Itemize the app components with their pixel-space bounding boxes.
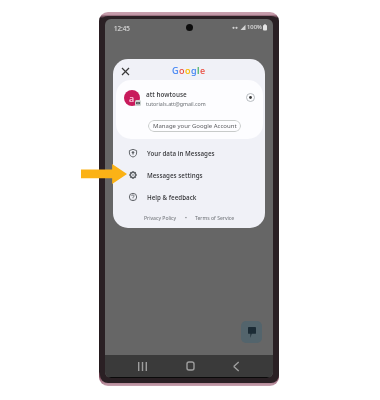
button[interactable]: Start chat <box>241 321 262 343</box>
button[interactable]: Terms of Service <box>195 215 235 222</box>
staticText: G <box>172 64 179 76</box>
button[interactable]: Recent apps <box>135 359 149 373</box>
staticText: 12:45 <box>114 24 130 32</box>
button[interactable]: Help & feedback <box>113 186 265 207</box>
staticText: Manage your Google Account <box>153 122 237 130</box>
staticText: e <box>200 64 206 76</box>
staticText: • <box>177 215 195 222</box>
staticText: Messages settings <box>147 171 203 179</box>
staticText: Your data in Messages <box>147 149 215 157</box>
staticText: att howtouse <box>146 90 187 99</box>
button[interactable]: Privacy Policy <box>144 215 177 222</box>
button[interactable]: Messages settings <box>113 164 265 185</box>
button[interactable]: Manage your Google Account <box>148 120 241 132</box>
staticText: g <box>191 64 197 76</box>
staticText: a <box>129 92 135 104</box>
button[interactable]: Expand account list <box>242 89 258 105</box>
button[interactable]: Your data in Messages <box>113 142 265 163</box>
staticText: tutorials.att@gmail.com <box>146 100 206 107</box>
button[interactable]: Close <box>118 64 132 78</box>
button[interactable]: Home <box>183 359 197 373</box>
staticText: 100% <box>247 23 262 31</box>
staticText: o <box>185 64 191 76</box>
staticText: o <box>179 64 185 76</box>
button[interactable]: Back <box>229 359 243 373</box>
staticText: Help & feedback <box>147 193 197 201</box>
staticText: l <box>197 64 200 76</box>
